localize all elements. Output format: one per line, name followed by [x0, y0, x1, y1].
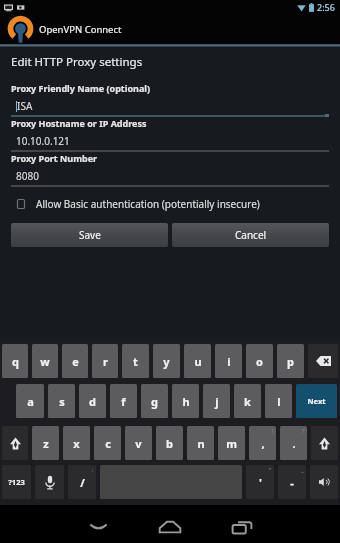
staticText: u — [194, 354, 202, 369]
button[interactable]: Shift — [311, 426, 338, 460]
button[interactable]: e — [62, 344, 88, 378]
staticText: - — [290, 475, 294, 490]
staticText: j — [215, 394, 219, 409]
button[interactable]: f — [110, 384, 137, 418]
staticText: w — [40, 354, 50, 369]
button[interactable]: Backspace — [308, 344, 338, 378]
button[interactable]: m — [218, 426, 245, 460]
staticText: Proxy Friendly Name (optional) — [11, 82, 151, 94]
staticText: Edit HTTP Proxy settings — [11, 54, 143, 70]
button[interactable]: o — [246, 344, 273, 378]
staticText: / — [80, 475, 85, 490]
button[interactable]: Allow Basic authentication (potentially … — [11, 197, 329, 211]
button[interactable]: k — [234, 384, 261, 418]
staticText: q — [12, 354, 19, 369]
button[interactable]: x — [63, 426, 90, 460]
staticText: 2:56 — [317, 1, 335, 13]
staticText: ? — [302, 427, 305, 435]
button[interactable]: - — [278, 465, 306, 499]
button[interactable]: h — [172, 384, 199, 418]
staticText: x — [73, 436, 80, 451]
staticText: p — [287, 354, 294, 369]
staticText: s — [59, 394, 65, 409]
button[interactable]: Next — [296, 384, 337, 418]
button[interactable]: t — [122, 344, 149, 378]
staticText: 8080 — [16, 169, 39, 183]
button[interactable]: d — [79, 384, 106, 418]
staticText: b — [166, 436, 173, 451]
staticText: Next — [307, 396, 326, 406]
staticText: Cancel — [235, 228, 267, 242]
staticText: . — [292, 436, 296, 451]
button[interactable]: c — [94, 426, 121, 460]
button[interactable]: b — [156, 426, 183, 460]
button[interactable]: Shift — [2, 426, 28, 460]
button[interactable]: ?123 — [2, 465, 31, 499]
staticText: m — [226, 436, 237, 451]
staticText: Save — [79, 228, 101, 242]
button[interactable]: p — [277, 344, 304, 378]
staticText: e — [72, 354, 79, 369]
staticText: n — [197, 436, 205, 451]
staticText: r — [103, 354, 108, 369]
staticText: : — [92, 466, 94, 474]
staticText: v — [135, 436, 142, 451]
staticText: c — [105, 436, 111, 451]
button[interactable]: Recent apps — [223, 508, 261, 543]
button[interactable]: j — [203, 384, 230, 418]
staticText: a — [27, 394, 34, 409]
button[interactable]: a — [16, 384, 44, 418]
staticText: OpenVPN Connect — [39, 23, 122, 36]
staticText: h — [182, 394, 190, 409]
staticText: Proxy Hostname or IP Address — [11, 117, 147, 129]
button[interactable]: y — [153, 344, 180, 378]
staticText: 10.10.0.121 — [16, 134, 70, 148]
staticText: f — [121, 394, 126, 409]
staticText: ' — [259, 475, 262, 490]
button[interactable]: n — [187, 426, 214, 460]
button[interactable]: z — [32, 426, 59, 460]
staticText: Proxy Port Number — [11, 152, 98, 164]
staticText: g — [151, 394, 158, 409]
button[interactable]: Voice input — [35, 465, 64, 499]
button[interactable]: Save — [11, 223, 168, 247]
staticText: o — [256, 354, 263, 369]
button[interactable]: Back — [79, 508, 117, 543]
staticText: k — [244, 394, 251, 409]
staticText: z — [43, 436, 49, 451]
button[interactable]: , — [249, 426, 276, 460]
button[interactable]: g — [141, 384, 168, 418]
staticText: l — [277, 394, 281, 409]
staticText: , — [261, 436, 265, 451]
button[interactable]: u — [184, 344, 211, 378]
button[interactable]: i — [215, 344, 242, 378]
button[interactable]: ' — [246, 465, 274, 499]
staticText: ! — [272, 427, 274, 435]
staticText: " — [269, 466, 272, 474]
button[interactable]: Sound — [310, 465, 338, 499]
button[interactable]: Home — [151, 508, 189, 543]
button[interactable]: v — [125, 426, 152, 460]
staticText: y — [163, 354, 170, 369]
button[interactable]: w — [32, 344, 58, 378]
staticText: ISA — [17, 99, 33, 113]
button[interactable]: / — [68, 465, 96, 499]
button[interactable]: s — [48, 384, 75, 418]
button[interactable]: Cancel — [172, 223, 329, 247]
button[interactable]: q — [2, 344, 28, 378]
button[interactable]: l — [265, 384, 292, 418]
staticText: t — [133, 354, 138, 369]
staticText: ?123 — [8, 477, 25, 487]
staticText: d — [89, 394, 96, 409]
button[interactable]: . — [280, 426, 307, 460]
staticText: Allow Basic authentication (potentially … — [36, 197, 260, 211]
staticText: _ — [301, 466, 304, 474]
button[interactable]: r — [92, 344, 118, 378]
staticText: i — [227, 354, 231, 369]
